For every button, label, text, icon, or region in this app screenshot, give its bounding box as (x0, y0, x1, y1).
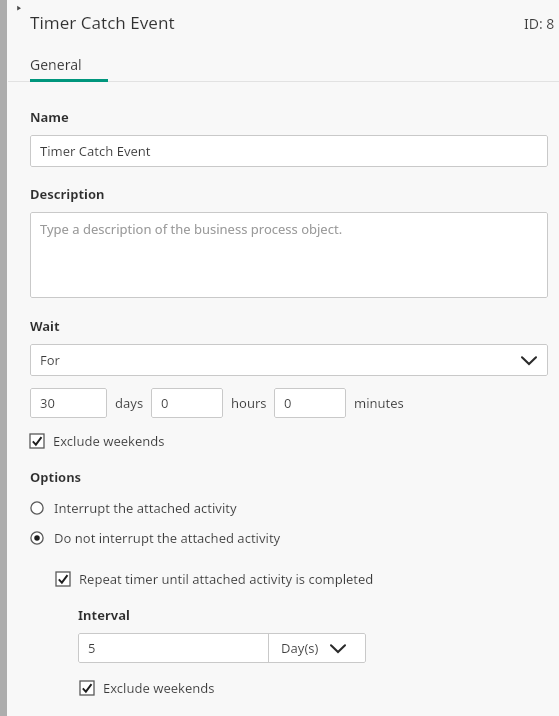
button[interactable]: 30 (30, 388, 107, 418)
staticText: Do not interrupt the attached activity (54, 529, 281, 547)
staticText: Repeat timer until attached activity is … (79, 570, 374, 588)
staticText: minutes (354, 394, 404, 412)
button[interactable]: Type a description of the business proce… (30, 212, 548, 298)
staticText: Options (30, 468, 82, 486)
button[interactable]: Exclude weekends (30, 428, 548, 454)
button[interactable]: Day(s) (269, 633, 366, 663)
button[interactable]: Interrupt the attached activity (30, 494, 548, 522)
staticText: ID: 8 (524, 14, 555, 33)
staticText: Exclude weekends (103, 679, 215, 697)
staticText: 30 (40, 394, 55, 412)
button[interactable]: Timer Catch Event (30, 135, 548, 167)
staticText: Interval (78, 606, 130, 624)
button[interactable]: Exclude weekends (30, 675, 548, 701)
button[interactable]: 0 (151, 388, 223, 418)
button[interactable]: Repeat timer until attached activity is … (30, 566, 548, 592)
staticText: Day(s) (281, 639, 319, 657)
staticText: Wait (30, 317, 60, 335)
staticText: hours (231, 394, 267, 412)
button[interactable]: Do not interrupt the attached activity (30, 524, 548, 552)
staticText: Timer Catch Event (40, 142, 151, 160)
staticText: General (30, 55, 82, 74)
button[interactable]: Expand (14, 4, 24, 14)
staticText: 0 (284, 394, 292, 412)
staticText: Interrupt the attached activity (54, 499, 237, 517)
button[interactable]: General (30, 46, 82, 82)
staticText: Description (30, 185, 105, 203)
staticText: Type a description of the business proce… (40, 220, 343, 238)
staticText: 5 (88, 639, 96, 657)
button[interactable]: For (30, 344, 548, 376)
button[interactable]: 5 (88, 633, 268, 663)
staticText: days (115, 394, 144, 412)
staticText: For (40, 351, 60, 369)
staticText: Name (30, 108, 69, 126)
staticText: Timer Catch Event (30, 11, 175, 34)
staticText: Exclude weekends (53, 432, 165, 450)
staticText: 0 (161, 394, 169, 412)
button[interactable]: 0 (274, 388, 346, 418)
